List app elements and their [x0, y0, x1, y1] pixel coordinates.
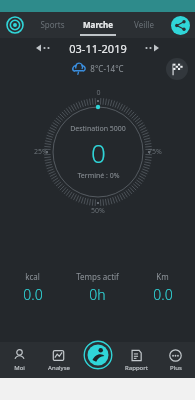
staticText: Moi	[14, 364, 25, 372]
staticText: 0	[91, 135, 106, 170]
button[interactable]: Objectifs	[166, 58, 188, 80]
staticText: Rapport	[125, 364, 148, 372]
staticText: 8°C-14°C	[90, 63, 124, 74]
button[interactable]: Temps actif	[65, 268, 130, 306]
button[interactable]: Jour suivant	[141, 40, 161, 56]
button[interactable]: 0	[34, 88, 162, 216]
button[interactable]: Profil	[5, 15, 25, 35]
staticText: Marche	[83, 19, 113, 30]
staticText: 0.0	[23, 285, 43, 304]
button[interactable]: Moi	[0, 342, 39, 378]
staticText: 25%	[34, 147, 48, 157]
button[interactable]: kcal	[0, 268, 65, 306]
button[interactable]: Km	[130, 268, 195, 306]
button[interactable]: Partager	[171, 16, 190, 35]
staticText: 03-11-2019	[69, 41, 127, 56]
staticText: Destination 5000	[70, 124, 126, 134]
button[interactable]: Démarrer	[83, 340, 113, 370]
staticText: 75%	[148, 147, 162, 157]
button[interactable]: 8°C-14°C	[0, 58, 195, 78]
button[interactable]: Veille	[124, 12, 164, 38]
staticText: Temps actif	[76, 271, 119, 282]
staticText: 50%	[91, 206, 105, 216]
staticText: Veille	[134, 19, 154, 30]
staticText: Sports	[40, 19, 65, 30]
staticText: 0h	[89, 285, 106, 304]
button[interactable]: Jour précédent	[34, 40, 54, 56]
staticText: 0.0	[153, 285, 173, 304]
staticText: 0	[96, 88, 101, 98]
button[interactable]: Plus	[156, 342, 195, 378]
staticText: Plus	[170, 364, 182, 372]
button[interactable]: Rapport	[117, 342, 156, 378]
staticText: Terminé : 0%	[77, 171, 120, 181]
button[interactable]: Marche	[78, 12, 118, 38]
staticText: kcal	[25, 271, 40, 282]
staticText: Analyse	[48, 364, 70, 372]
button[interactable]: Sports	[32, 12, 72, 38]
button[interactable]: Analyse	[39, 342, 78, 378]
staticText: Km	[156, 271, 169, 282]
